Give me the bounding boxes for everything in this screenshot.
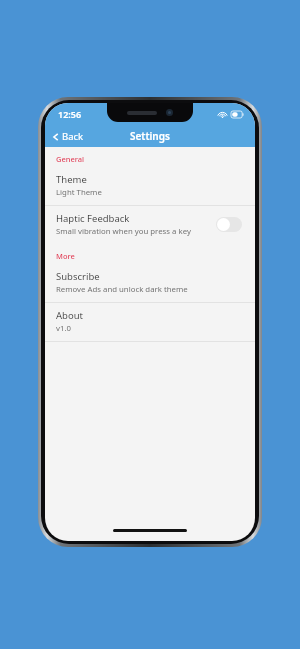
staticText: Light Theme: [56, 187, 102, 198]
staticText: Remove Ads and unlock dark theme: [56, 284, 188, 295]
button[interactable]: About: [45, 303, 255, 341]
staticText: About: [56, 309, 83, 322]
staticText: v1.0: [56, 323, 71, 334]
staticText: 12:56: [58, 108, 82, 120]
staticText: Settings: [130, 129, 170, 143]
button[interactable]: Back: [45, 127, 92, 146]
staticText: Haptic Feedback: [56, 212, 130, 225]
button[interactable]: Haptic Feedback toggle: [214, 215, 244, 234]
staticText: Subscribe: [56, 270, 100, 283]
button[interactable]: Theme: [45, 167, 255, 205]
staticText: Small vibration when you press a key: [56, 226, 191, 237]
staticText: Theme: [56, 173, 87, 186]
staticText: More: [56, 251, 75, 261]
button[interactable]: Subscribe: [45, 264, 255, 302]
staticText: Back: [62, 130, 84, 143]
button[interactable]: Haptic Feedback: [45, 206, 255, 244]
staticText: General: [56, 154, 85, 164]
